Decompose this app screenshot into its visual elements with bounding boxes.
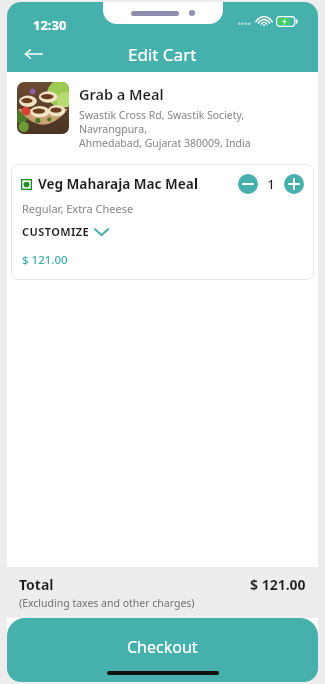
button[interactable]: Back: [17, 37, 51, 71]
staticText: 1: [267, 175, 275, 193]
staticText: Total: [19, 575, 54, 594]
button[interactable]: Increase quantity: [284, 174, 304, 194]
staticText: 12:30: [33, 16, 67, 34]
staticText: CUSTOMIZE: [22, 224, 90, 239]
button[interactable]: Checkout: [7, 618, 318, 682]
staticText: $ 121.00: [22, 252, 68, 268]
button[interactable]: Decrease quantity: [238, 174, 258, 194]
staticText: Checkout: [127, 636, 198, 658]
button[interactable]: Grab a Meal: [11, 74, 314, 158]
staticText: Veg Maharaja Mac Meal: [38, 175, 238, 193]
button[interactable]: CUSTOMIZE: [21, 223, 112, 240]
staticText: $ 121.00: [250, 575, 306, 594]
staticText: Edit Cart: [128, 43, 197, 66]
staticText: Regular, Extra Cheese: [22, 201, 134, 216]
staticText: (Excluding taxes and other charges): [19, 596, 195, 610]
staticText: Swastik Cross Rd, Swastik Society, Navra…: [79, 108, 308, 150]
staticText: Grab a Meal: [79, 84, 164, 104]
